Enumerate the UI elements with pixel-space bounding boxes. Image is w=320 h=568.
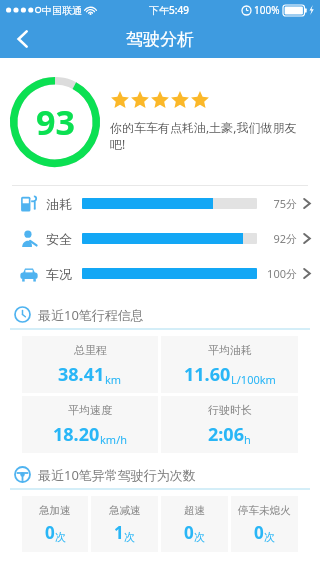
staticText: 1 xyxy=(114,521,124,544)
button[interactable]: 急加速 xyxy=(22,496,88,552)
staticText: 最近10笔行程信息 xyxy=(38,306,144,324)
staticText: 平均油耗 xyxy=(208,343,252,357)
button[interactable]: 平均油耗 xyxy=(161,336,298,393)
staticText: 次 xyxy=(264,530,275,544)
staticText: 0 xyxy=(184,521,194,544)
staticText: 总里程 xyxy=(74,343,107,357)
button[interactable]: 超速 xyxy=(161,496,228,552)
staticText: 次 xyxy=(55,530,66,544)
staticText: 次 xyxy=(124,530,135,544)
staticText: 驾驶分析 xyxy=(126,29,194,50)
staticText: 92分 xyxy=(265,231,297,246)
staticText: 急加速 xyxy=(39,504,71,517)
staticText: 100% xyxy=(254,3,280,17)
staticText: 油耗 xyxy=(46,196,72,212)
staticText: 93 xyxy=(36,99,75,145)
staticText: 2:06 xyxy=(208,422,244,447)
staticText: L/100km xyxy=(231,372,276,387)
staticText: 最近10笔异常驾驶行为次数 xyxy=(38,466,196,484)
staticText: km xyxy=(105,372,122,387)
staticText: 行驶时长 xyxy=(208,403,252,417)
button[interactable]: 停车未熄火 xyxy=(231,496,298,552)
staticText: 75分 xyxy=(265,196,297,211)
button[interactable]: 总里程 xyxy=(22,336,158,393)
staticText: 次 xyxy=(194,530,205,544)
button[interactable]: 平均速度 xyxy=(22,396,158,453)
staticText: 下午5:49 xyxy=(149,3,189,17)
staticText: 平均速度 xyxy=(68,403,112,417)
staticText: 车况 xyxy=(46,266,72,282)
staticText: km/h xyxy=(100,432,128,447)
staticText: 0 xyxy=(254,521,264,544)
staticText: 18.20 xyxy=(53,422,100,447)
staticText: 急减速 xyxy=(109,504,141,517)
staticText: h xyxy=(244,432,251,447)
button[interactable]: 油耗 xyxy=(0,186,320,221)
staticText: 你的车车有点耗油,土豪,我们做朋友吧! xyxy=(110,119,306,153)
button[interactable]: 急减速 xyxy=(91,496,158,552)
staticText: 停车未熄火 xyxy=(238,504,291,517)
button[interactable]: 安全 xyxy=(0,221,320,256)
button[interactable]: 行驶时长 xyxy=(161,396,298,453)
staticText: 11.60 xyxy=(184,362,231,387)
staticText: 安全 xyxy=(46,231,72,247)
staticText: 38.41 xyxy=(58,362,105,387)
button[interactable]: 车况 xyxy=(0,256,320,291)
staticText: 0 xyxy=(45,521,55,544)
staticText: 超速 xyxy=(184,504,205,517)
staticText: 中国联通 xyxy=(42,4,82,17)
staticText: 100分 xyxy=(265,266,297,281)
button[interactable]: Back xyxy=(0,20,44,58)
